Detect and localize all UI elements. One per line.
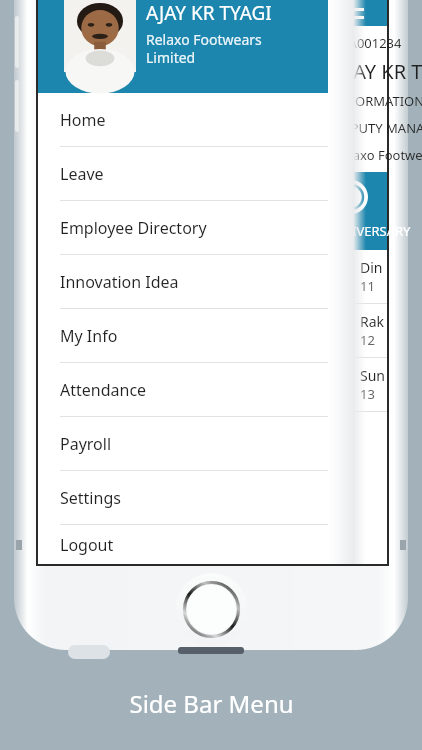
button[interactable]: Profile photo: [64, 0, 136, 72]
staticText: My Info: [60, 325, 118, 347]
button[interactable]: My Info: [38, 309, 328, 363]
staticText: Rakesh Sharma: [360, 312, 387, 331]
staticText: Leave: [60, 163, 104, 185]
staticText: Side Bar Menu: [129, 687, 294, 720]
button[interactable]: Leave: [38, 147, 328, 201]
staticText: 13 Jan: [360, 385, 387, 403]
button[interactable]: Logout: [38, 525, 328, 564]
staticText: INFORMATION TECHNOLOGY: [334, 92, 422, 110]
button[interactable]: Innovation Idea: [38, 255, 328, 309]
button[interactable]: Employee Directory: [38, 201, 328, 255]
staticText: Dinesh Kumar: [360, 258, 387, 277]
button[interactable]: Home: [38, 93, 328, 147]
staticText: Settings: [60, 487, 121, 509]
staticText: AJAY KR TYAGI: [146, 0, 272, 26]
staticText: Logout: [60, 534, 114, 556]
staticText: Relaxo Footwears Limited: [334, 146, 422, 164]
button[interactable]: Rakesh Sharma: [38, 304, 387, 357]
button[interactable]: Settings: [38, 471, 328, 525]
button[interactable]: Sunil Verma: [38, 358, 387, 411]
button[interactable]: Attendance: [38, 363, 328, 417]
staticText: RFA001234: [334, 34, 402, 52]
staticText: Sunil Verma: [360, 366, 387, 385]
staticText: ANNIVERSARY: [324, 222, 411, 240]
staticText: Home: [60, 109, 106, 131]
button[interactable]: Payroll: [38, 417, 328, 471]
button[interactable]: Dinesh Kumar: [38, 250, 387, 303]
staticText: Employee Directory: [60, 217, 207, 239]
staticText: AJAY KR TYAGI: [334, 58, 422, 85]
button[interactable]: Open navigation menu: [334, 2, 370, 28]
staticText: Payroll: [60, 433, 112, 455]
staticText: Attendance: [60, 379, 147, 401]
staticText: 11 Jan: [360, 277, 387, 295]
staticText: DEPUTY MANAGER: [334, 119, 422, 137]
staticText: Relaxo Footwears Limited: [146, 30, 262, 67]
staticText: 12 Jan: [360, 331, 387, 349]
staticText: Innovation Idea: [60, 271, 179, 293]
